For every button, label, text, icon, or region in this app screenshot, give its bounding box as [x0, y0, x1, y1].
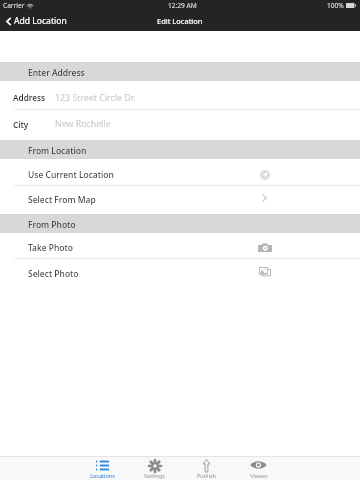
other: Take photo — [258, 243, 272, 252]
other: Use current location — [260, 170, 270, 180]
staticText: Select From Map — [28, 194, 96, 206]
staticText: From Location — [28, 145, 87, 157]
staticText: Locations — [90, 472, 115, 479]
staticText: Viewer — [250, 472, 268, 479]
staticText: 12:29 AM — [168, 1, 197, 10]
staticText: Edit Location — [157, 16, 203, 26]
button[interactable]: Publish — [181, 456, 232, 480]
staticText: Use Current Location — [28, 169, 114, 181]
button[interactable]: Take Photo — [0, 233, 360, 259]
staticText: New Rochelle — [55, 118, 111, 130]
staticText: Settings — [144, 472, 165, 479]
button[interactable]: Select Photo — [0, 259, 360, 286]
staticText: Address — [13, 92, 46, 103]
staticText: Take Photo — [28, 242, 73, 254]
staticText: From Photo — [28, 219, 76, 231]
button[interactable]: Address — [0, 81, 360, 110]
staticText: 100% — [327, 1, 344, 10]
staticText: 123 Street Circle Dr. — [55, 92, 136, 104]
staticText: City — [13, 119, 29, 130]
staticText: Carrier — [3, 1, 25, 10]
staticText: Select Photo — [28, 268, 79, 280]
button[interactable]: Add Location — [0, 15, 73, 27]
button[interactable]: Settings — [129, 456, 180, 480]
button[interactable]: Locations — [77, 456, 128, 480]
button[interactable]: Viewer — [233, 456, 284, 480]
staticText: Publish — [197, 472, 216, 479]
staticText: Enter Address — [28, 67, 85, 79]
staticText: Add Location — [14, 15, 67, 27]
other: Open — [262, 194, 267, 202]
button[interactable]: Select From Map — [0, 186, 360, 214]
button[interactable]: Use Current Location — [0, 159, 360, 186]
button[interactable]: City — [0, 110, 360, 140]
other: Select photo — [259, 266, 271, 278]
